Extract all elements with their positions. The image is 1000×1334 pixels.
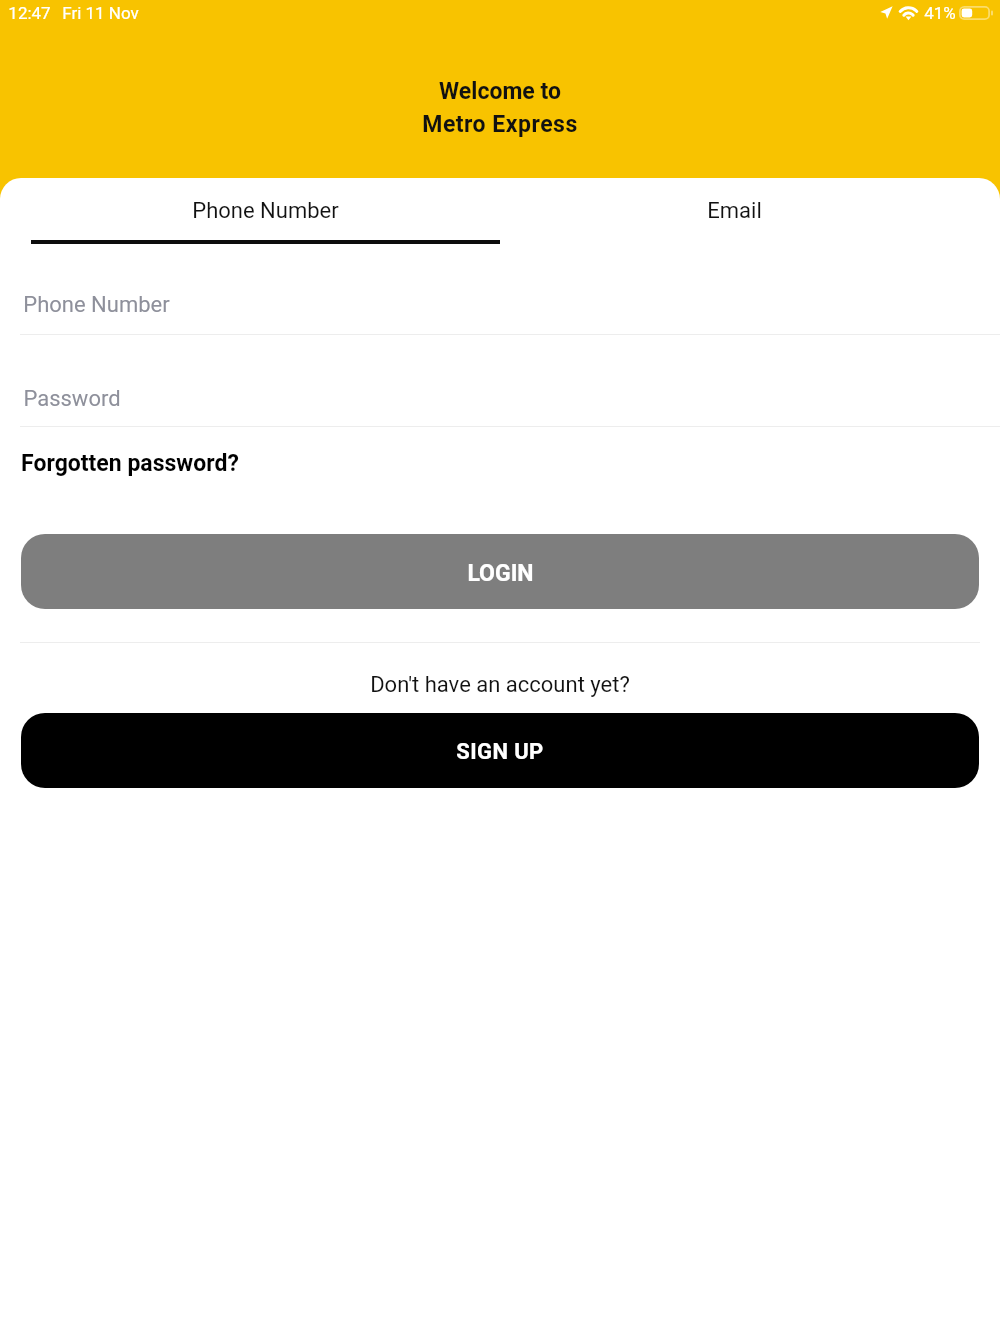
staticText: 41%: [924, 3, 956, 23]
button[interactable]: [0, 270, 1000, 335]
button[interactable]: [0, 364, 1000, 427]
staticText: Phone Number: [192, 198, 339, 224]
staticText: Password: [23, 386, 121, 412]
staticText: LOGIN: [467, 560, 534, 587]
other: Wi-Fi: [899, 6, 918, 20]
other: Location: [880, 6, 893, 19]
staticText: Email: [707, 198, 762, 224]
staticText: Phone Number: [23, 292, 170, 318]
staticText: 12:47: [8, 3, 51, 23]
button[interactable]: SIGN UP: [21, 713, 979, 788]
staticText: Forgotten password?: [21, 450, 239, 477]
button[interactable]: Forgotten password?: [21, 450, 239, 477]
staticText: Fri 11 Nov: [62, 3, 139, 23]
button[interactable]: Email: [500, 178, 969, 240]
other: Battery 41 percent: [959, 6, 993, 20]
button[interactable]: Phone Number: [31, 178, 500, 244]
staticText: Metro Express: [422, 111, 578, 138]
staticText: Welcome to: [439, 78, 561, 105]
staticText: SIGN UP: [456, 739, 544, 765]
staticText: Don't have an account yet?: [370, 672, 630, 698]
button[interactable]: LOGIN: [21, 534, 979, 609]
